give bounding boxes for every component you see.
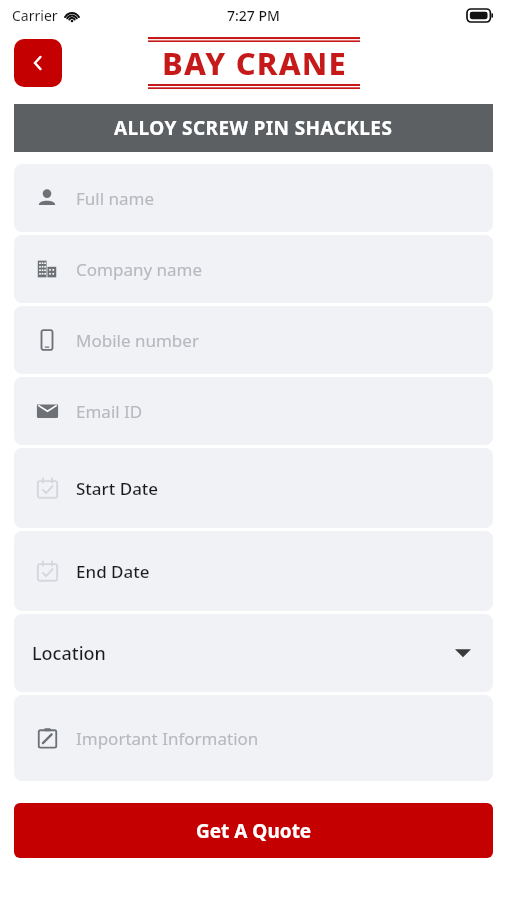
staticText: BAY CRANE [162, 42, 347, 84]
button[interactable]: Back [14, 39, 62, 87]
staticText: Important Information [76, 727, 259, 750]
staticText: Location [32, 641, 106, 666]
button[interactable]: Company name [14, 235, 493, 303]
staticText: End Date [76, 560, 150, 583]
button[interactable]: End Date [14, 531, 493, 611]
button[interactable]: Important Information [14, 695, 493, 781]
button[interactable]: Email ID [14, 377, 493, 445]
staticText: ALLOY SCREW PIN SHACKLES [114, 115, 393, 141]
staticText: Start Date [76, 477, 159, 500]
staticText: Email ID [76, 400, 143, 423]
staticText: 7:27 PM [227, 6, 280, 25]
staticText: Company name [76, 258, 203, 281]
button[interactable]: Start Date [14, 448, 493, 528]
staticText: Full name [76, 187, 155, 210]
button[interactable]: Mobile number [14, 306, 493, 374]
button[interactable]: Get A Quote [14, 803, 493, 858]
button[interactable]: Location [14, 614, 493, 692]
staticText: Carrier [12, 6, 58, 25]
button[interactable]: Full name [14, 164, 493, 232]
staticText: Mobile number [76, 329, 199, 352]
staticText: Get A Quote [196, 818, 312, 844]
